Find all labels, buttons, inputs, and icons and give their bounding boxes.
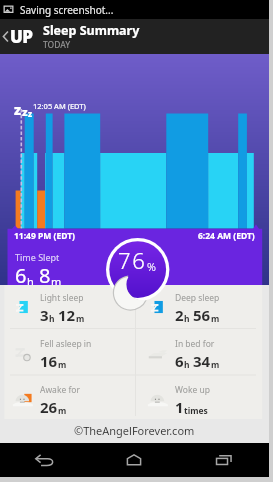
staticText: 1 [175,397,184,417]
staticText: 6 [15,262,27,289]
staticText: ©TheAngelForever.com [74,423,195,438]
staticText: Fell asleep in [40,338,92,350]
button[interactable]: Home [89,443,179,477]
staticText: Time Slept [15,251,60,263]
staticText: In bed for [175,338,215,350]
staticText: TODAY [43,39,71,51]
staticText: UP [10,25,33,48]
staticText: m [76,313,85,325]
button[interactable]: Light sleep [0,285,135,331]
button[interactable]: Woke up [135,377,269,423]
button[interactable]: Deep sleep [135,285,269,331]
staticText: 12:05 AM (EDT) [33,101,86,111]
staticText: Sleep Summary [43,22,140,39]
staticText: 26 [40,397,58,417]
staticText: 34 [193,351,211,371]
staticText: % [147,259,156,274]
other: Back [2,30,9,43]
staticText: times [184,405,208,417]
staticText: Light sleep [40,292,84,304]
staticText: 8 [39,262,51,289]
button[interactable]: Recents [179,443,269,477]
staticText: 12 [58,305,76,325]
button[interactable]: Back [0,25,37,48]
staticText: z [14,100,22,119]
staticText: h [184,313,190,325]
staticText: Deep sleep [175,292,220,304]
button[interactable]: In bed for [135,331,269,377]
staticText: 16 [40,351,58,371]
staticText: Woke up [175,384,210,396]
staticText: 76 [118,245,147,275]
staticText: m [58,405,67,417]
staticText: m [58,359,67,371]
staticText: 3 [40,305,49,325]
staticText: 56 [193,305,211,325]
staticText: h [27,274,34,289]
staticText: m [51,274,62,289]
staticText: z [28,108,33,119]
staticText: h [49,313,55,325]
staticText: Saving screenshot... [20,3,114,17]
staticText: 2 [175,305,184,325]
staticText: 11:49 PM (EDT) [14,230,75,242]
staticText: m [211,313,220,325]
button[interactable]: Fell asleep in [0,331,135,377]
staticText: m [211,359,220,371]
staticText: 6:24 AM (EDT) [198,230,255,242]
staticText: 6 [175,351,184,371]
staticText: Awake for [40,384,81,396]
staticText: h [184,359,190,371]
button[interactable]: Back [0,443,89,477]
button[interactable]: Awake for [0,377,135,423]
staticText: z [22,104,28,119]
